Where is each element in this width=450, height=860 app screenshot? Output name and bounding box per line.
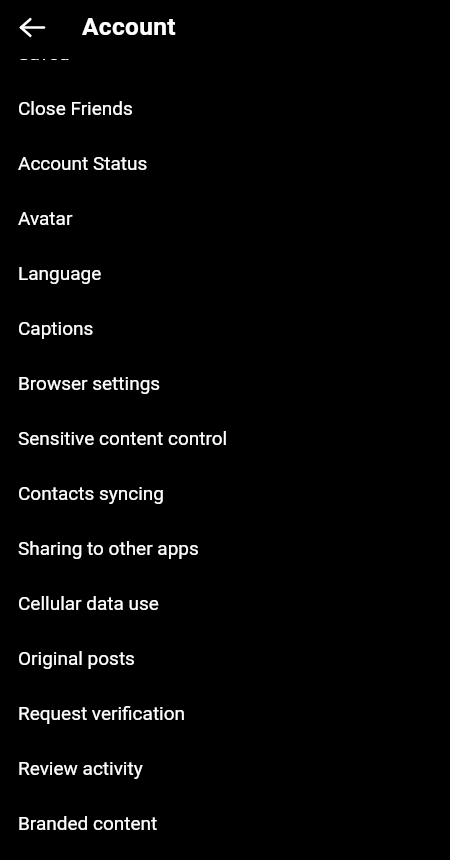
staticText: Contacts syncing: [18, 482, 164, 504]
button[interactable]: Review activity: [0, 740, 450, 795]
staticText: Request verification: [18, 702, 186, 724]
staticText: Saved: [18, 59, 70, 64]
staticText: Branded content: [18, 812, 158, 834]
button[interactable]: Captions: [0, 300, 450, 355]
staticText: Sharing to other apps: [18, 537, 199, 559]
button[interactable]: Sensitive content control: [0, 410, 450, 465]
button[interactable]: Avatar: [0, 190, 450, 245]
staticText: Browser settings: [18, 372, 161, 394]
staticText: Account: [82, 12, 176, 41]
button[interactable]: Close Friends: [0, 80, 450, 135]
button[interactable]: Browser settings: [0, 355, 450, 410]
staticText: Language: [18, 262, 102, 284]
button[interactable]: Contacts syncing: [0, 465, 450, 520]
button[interactable]: Account Status: [0, 135, 450, 190]
button[interactable]: Language: [0, 245, 450, 300]
staticText: Avatar: [18, 207, 73, 229]
button[interactable]: Sharing to other apps: [0, 520, 450, 575]
button[interactable]: Original posts: [0, 630, 450, 685]
staticText: Sensitive content control: [18, 427, 228, 449]
staticText: Review activity: [18, 757, 143, 779]
staticText: Captions: [18, 317, 94, 339]
button[interactable]: Request verification: [0, 685, 450, 740]
button[interactable]: Saved: [0, 59, 450, 80]
staticText: Original posts: [18, 647, 135, 669]
button[interactable]: Branded content: [0, 795, 450, 850]
staticText: Cellular data use: [18, 592, 159, 614]
staticText: Close Friends: [18, 97, 133, 119]
button[interactable]: Back: [10, 5, 54, 49]
button[interactable]: Cellular data use: [0, 575, 450, 630]
staticText: Account Status: [18, 152, 148, 174]
